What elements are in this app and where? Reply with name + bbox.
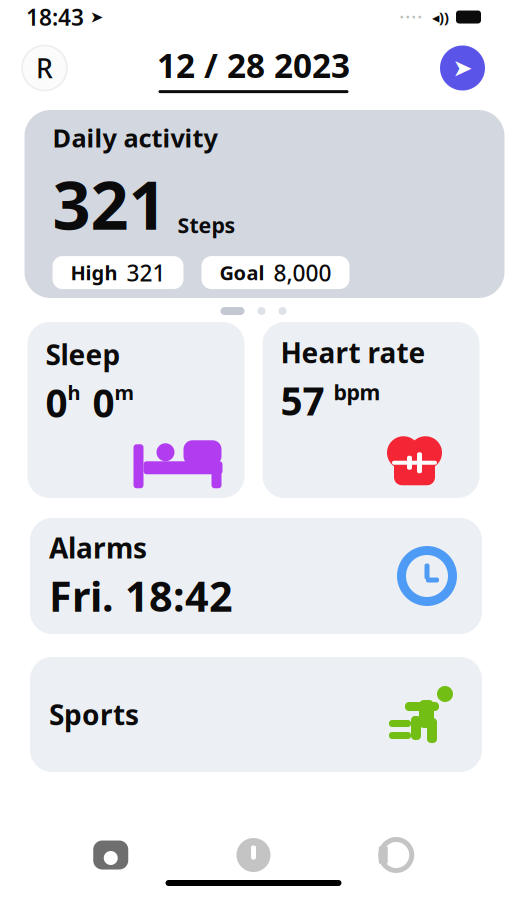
- staticText: Daily activity: [52, 121, 217, 154]
- staticText: Alarms: [49, 529, 147, 566]
- staticText: High: [70, 259, 117, 286]
- staticText: ➤: [84, 8, 103, 26]
- staticText: 18:43: [26, 2, 84, 32]
- staticText: Sports: [49, 696, 139, 733]
- button[interactable]: 12 / 28 2023: [157, 43, 350, 93]
- staticText: Goal: [219, 259, 264, 286]
- button[interactable]: Daily activity: [24, 110, 504, 298]
- button[interactable]: History: [221, 832, 285, 878]
- button[interactable]: Home: [79, 832, 143, 878]
- staticText: 321: [126, 257, 165, 288]
- staticText: Sleep: [45, 336, 120, 373]
- staticText: ➤: [452, 54, 472, 82]
- button[interactable]: Alarms: [30, 518, 482, 634]
- staticText: bpm: [333, 378, 380, 406]
- button[interactable]: Send: [440, 45, 485, 90]
- button[interactable]: Devices: [364, 832, 428, 878]
- staticText: • • • •: [400, 11, 422, 23]
- button[interactable]: Profile: [22, 45, 67, 90]
- staticText: h: [67, 379, 80, 405]
- button[interactable]: Sleep: [27, 322, 244, 498]
- staticText: 0: [92, 377, 114, 428]
- staticText: 57: [280, 375, 324, 426]
- staticText: 0: [45, 377, 67, 428]
- staticText: Steps: [177, 211, 235, 239]
- staticText: R: [36, 50, 53, 86]
- staticText: 321: [52, 160, 166, 248]
- staticText: ◂)): [422, 7, 449, 27]
- staticText: 8,000: [273, 257, 331, 288]
- staticText: 12 / 28 2023: [157, 43, 350, 87]
- staticText: Heart rate: [280, 334, 425, 371]
- staticText: m: [114, 379, 134, 405]
- staticText: Fri. 18:42: [49, 568, 233, 623]
- button[interactable]: Heart rate: [262, 322, 479, 498]
- button[interactable]: Sports: [30, 657, 482, 772]
